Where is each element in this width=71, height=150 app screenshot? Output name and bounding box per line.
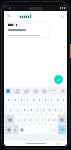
button[interactable]: Toolbar item 3 bbox=[42, 89, 46, 93]
button[interactable]: More bbox=[51, 90, 56, 91]
button[interactable]: Key bbox=[34, 115, 39, 124]
button[interactable]: Clear search bbox=[59, 13, 65, 19]
button[interactable]: Key bbox=[15, 115, 21, 124]
button[interactable]: Key bbox=[35, 105, 40, 114]
button[interactable]: Key bbox=[12, 95, 18, 104]
button[interactable]: Toolbar item 0 bbox=[15, 89, 19, 93]
button[interactable]: Key bbox=[13, 125, 18, 134]
button[interactable]: Key bbox=[25, 95, 30, 104]
button[interactable]: Key bbox=[53, 105, 58, 114]
button[interactable]: Key bbox=[28, 105, 34, 114]
button[interactable]: Search bbox=[58, 125, 66, 134]
button[interactable]: Key bbox=[19, 125, 25, 134]
button[interactable]: Back bbox=[12, 142, 15, 145]
button[interactable]: Key bbox=[55, 95, 60, 104]
button[interactable]: Key bbox=[51, 125, 57, 134]
button[interactable]: Key bbox=[5, 125, 12, 134]
button[interactable]: Key bbox=[59, 105, 64, 114]
button[interactable]: Key bbox=[14, 105, 20, 114]
button[interactable]: Key bbox=[19, 95, 24, 104]
button[interactable]: Key bbox=[37, 95, 42, 104]
button[interactable] bbox=[6, 21, 50, 38]
button[interactable]: Key bbox=[22, 115, 27, 124]
button[interactable]: Key bbox=[49, 95, 54, 104]
button[interactable]: Key bbox=[41, 105, 46, 114]
button[interactable]: Key bbox=[31, 95, 36, 104]
button[interactable]: Key bbox=[52, 115, 57, 124]
button[interactable]: Key bbox=[58, 115, 66, 124]
button[interactable]: Key bbox=[5, 95, 11, 104]
button[interactable] bbox=[19, 14, 31, 18]
button[interactable]: New note bbox=[54, 75, 63, 84]
button[interactable]: Toolbar item 1 bbox=[24, 89, 28, 93]
button[interactable]: Back bbox=[6, 13, 12, 19]
button[interactable]: Key bbox=[61, 95, 66, 104]
button[interactable]: Key bbox=[5, 115, 14, 124]
button[interactable]: Key bbox=[47, 105, 52, 114]
button[interactable]: Key bbox=[28, 115, 33, 124]
button[interactable]: Key bbox=[21, 105, 27, 114]
button[interactable]: Settings bbox=[61, 89, 65, 93]
button[interactable]: Key bbox=[40, 115, 45, 124]
button[interactable]: Toolbar item 2 bbox=[33, 89, 37, 93]
button[interactable]: Key bbox=[7, 105, 13, 114]
button[interactable]: Google bbox=[6, 89, 10, 93]
button[interactable]: Key bbox=[43, 95, 48, 104]
button[interactable]: Key bbox=[46, 115, 51, 124]
